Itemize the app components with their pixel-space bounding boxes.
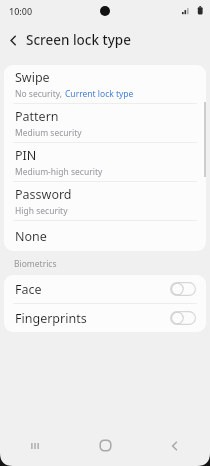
staticText: Password <box>15 186 72 203</box>
staticText: High security <box>15 205 68 217</box>
button[interactable]: Face <box>4 275 206 303</box>
button[interactable]: PIN <box>4 143 206 181</box>
staticText: Medium-high security <box>15 166 103 178</box>
staticText: None <box>15 228 47 245</box>
button[interactable]: Back <box>140 425 210 466</box>
staticText: Swipe <box>15 69 50 86</box>
staticText: Current lock type <box>65 88 134 100</box>
button[interactable]: Home <box>70 425 140 466</box>
staticText: Screen lock type <box>26 31 131 49</box>
staticText: Fingerprints <box>15 310 87 327</box>
button[interactable]: Password <box>4 182 206 220</box>
button[interactable]: Recents <box>0 425 70 466</box>
staticText: Medium security <box>15 127 82 139</box>
button[interactable]: Pattern <box>4 104 206 142</box>
staticText: Pattern <box>15 108 59 125</box>
staticText: Biometrics <box>14 258 57 270</box>
staticText: No security, <box>15 88 65 100</box>
button[interactable]: Back <box>0 27 26 53</box>
button[interactable]: Fingerprints <box>4 304 206 332</box>
staticText: PIN <box>15 147 37 164</box>
button[interactable]: None <box>4 221 206 251</box>
staticText: 10:00 <box>9 5 33 17</box>
staticText: Face <box>15 281 42 298</box>
button[interactable]: Swipe <box>4 65 206 103</box>
